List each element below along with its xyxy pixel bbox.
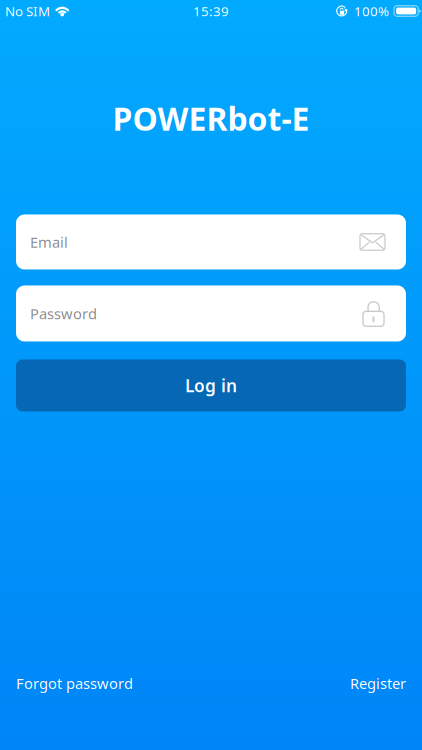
staticText: Register	[350, 673, 406, 693]
staticText: Password	[30, 304, 97, 323]
button[interactable]: Log in	[16, 359, 406, 411]
staticText: Log in	[185, 374, 237, 397]
staticText: Forgot password	[16, 673, 133, 693]
button[interactable]: Forgot password	[16, 673, 133, 693]
staticText: POWERbot-E	[112, 97, 309, 139]
button[interactable]: Register	[350, 673, 406, 693]
staticText: 15:39	[193, 2, 229, 20]
staticText: Email	[30, 232, 68, 252]
staticText: No SIM	[5, 2, 50, 20]
staticText: 100%	[354, 2, 389, 20]
